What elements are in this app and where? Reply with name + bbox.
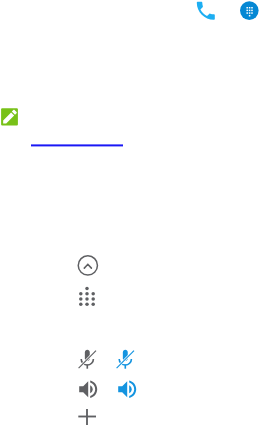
button[interactable]: Expand [76,253,100,277]
button[interactable]: Muted [113,347,137,371]
button[interactable]: Mute [75,347,99,371]
button[interactable]: Edit [1,108,18,126]
button[interactable]: Add call [77,407,98,425]
button[interactable]: Keypad [76,284,100,308]
button[interactable]: Call [192,0,218,24]
button[interactable]: Dialpad [240,1,260,21]
button[interactable]: Speaker [76,377,100,401]
button[interactable]: Speaker on [115,377,139,401]
